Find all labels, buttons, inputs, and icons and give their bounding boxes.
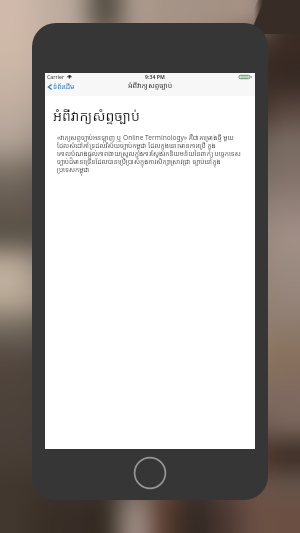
button[interactable]: Home bbox=[133, 456, 167, 490]
other: Back bbox=[48, 84, 52, 90]
staticText: «វាក្យសព្ទច្បាប់អនឡាញ ឬ Online Terminolo… bbox=[57, 133, 241, 174]
staticText: អំពីវាក្យសព្ទច្បាប់ bbox=[128, 81, 173, 91]
staticText: 9:34 PM bbox=[145, 73, 165, 80]
button[interactable]: Back bbox=[48, 82, 75, 92]
staticText: អំពីវាក្យសំព្ទច្បាប់ bbox=[53, 106, 140, 125]
staticText: Carrier bbox=[47, 73, 65, 80]
staticText: ទំព័រដើម bbox=[53, 82, 75, 92]
